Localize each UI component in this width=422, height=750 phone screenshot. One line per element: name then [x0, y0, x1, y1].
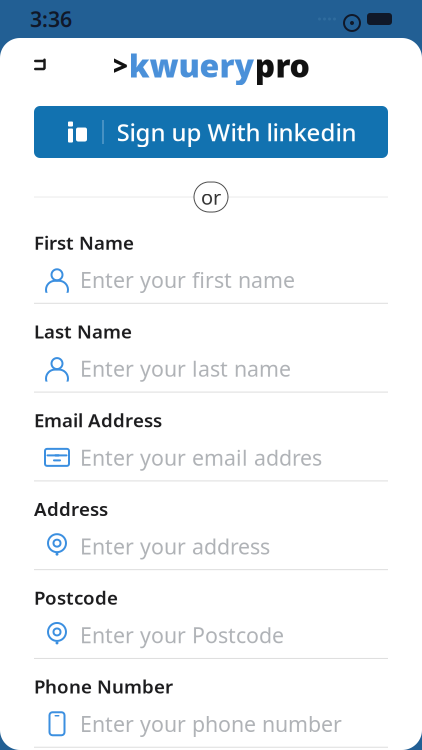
- button[interactable]: Enter your address: [34, 530, 388, 562]
- button[interactable]: Back: [24, 44, 60, 86]
- staticText: Enter your first name: [80, 266, 295, 294]
- staticText: Enter your address: [80, 532, 270, 560]
- button[interactable]: Enter your last name: [34, 353, 388, 385]
- staticText: Sign up With linkedin: [116, 116, 356, 148]
- button[interactable]: Enter your phone number: [34, 708, 388, 740]
- staticText: Enter your email addres: [80, 443, 322, 471]
- staticText: Phone Number: [34, 674, 173, 699]
- staticText: Enter your phone number: [80, 710, 342, 738]
- staticText: or: [201, 184, 221, 210]
- staticText: Last Name: [34, 319, 132, 344]
- button[interactable]: Enter your email addres: [34, 441, 388, 473]
- staticText: 3:36: [30, 5, 72, 33]
- button[interactable]: Sign up With linkedin: [34, 106, 388, 158]
- staticText: First Name: [34, 230, 134, 255]
- staticText: Email Address: [34, 408, 162, 432]
- staticText: pro: [254, 44, 309, 86]
- button[interactable]: Enter your first name: [34, 264, 388, 296]
- staticText: Enter your last name: [80, 354, 291, 383]
- staticText: Address: [34, 496, 108, 521]
- staticText: Postcode: [34, 585, 118, 610]
- staticText: kwuery: [128, 44, 254, 86]
- staticText: >: [112, 47, 128, 83]
- button[interactable]: Enter your Postcode: [34, 619, 388, 651]
- staticText: Enter your Postcode: [80, 621, 284, 649]
